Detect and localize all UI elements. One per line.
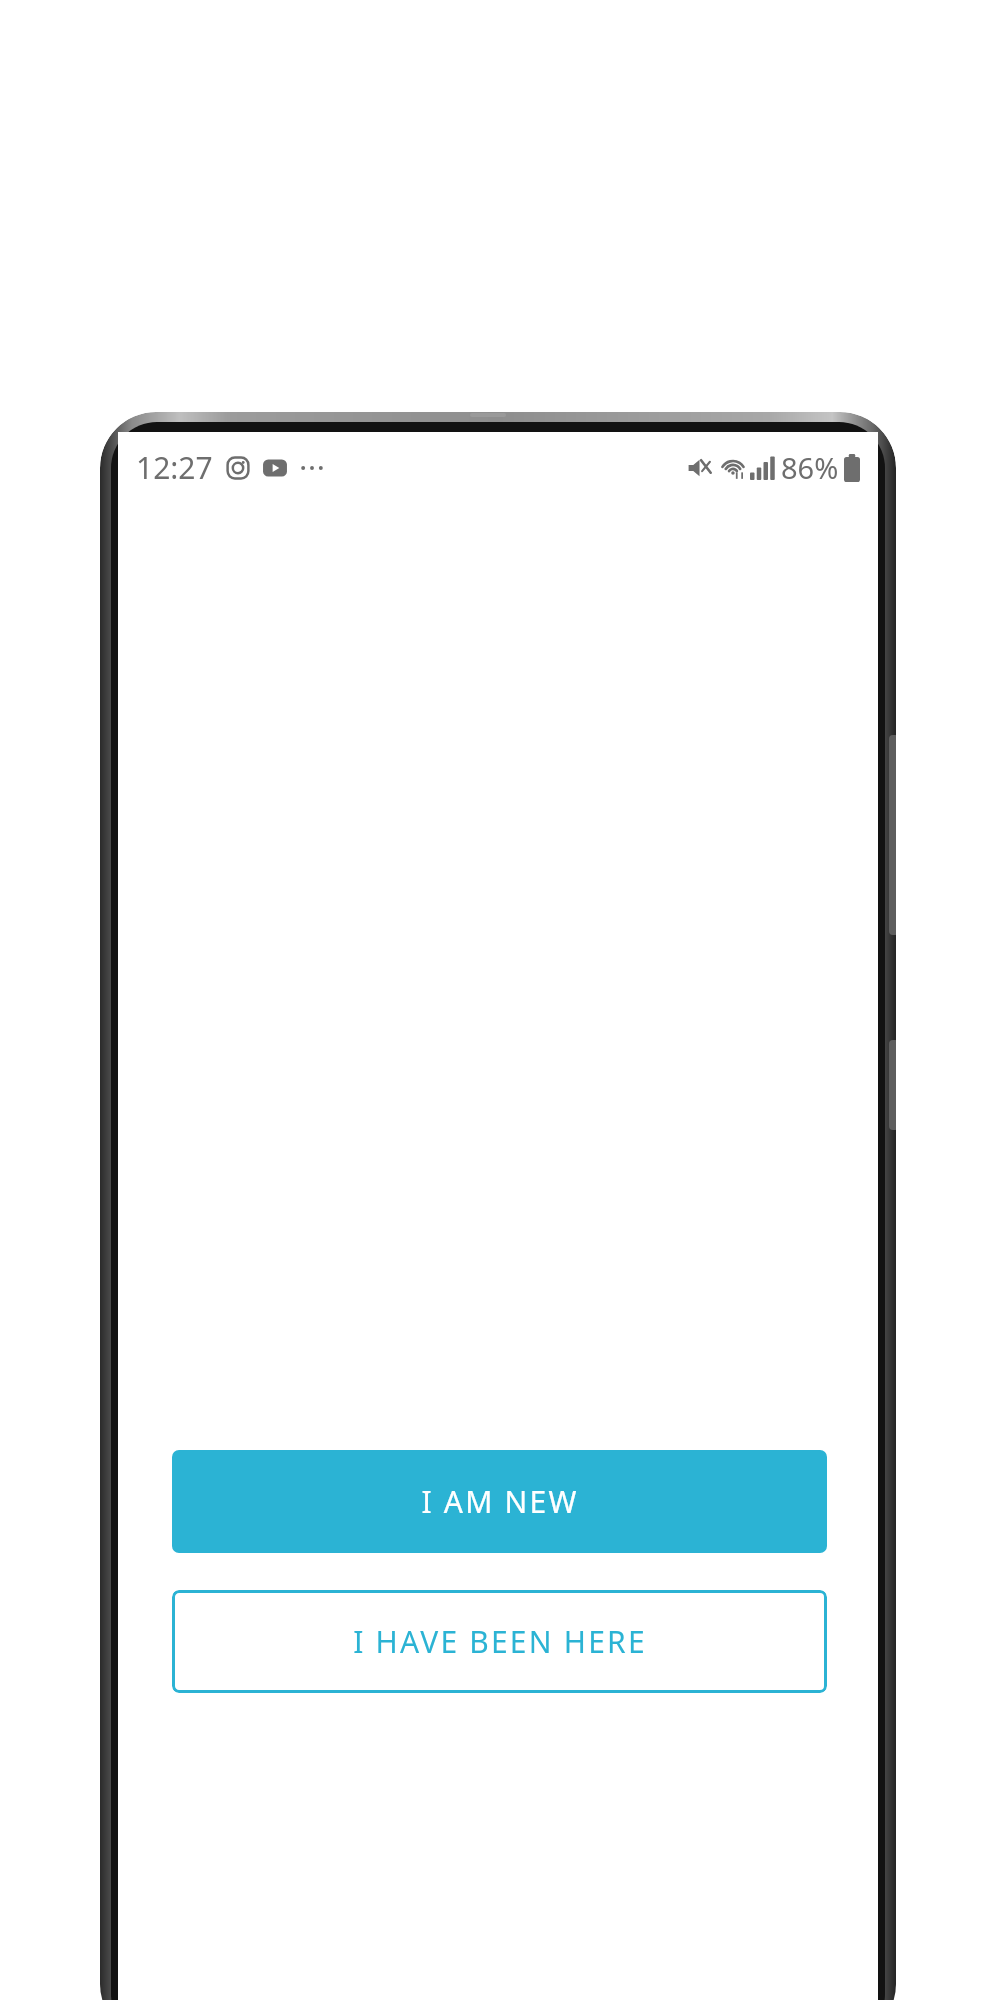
staticText: I AM NEW	[421, 1481, 579, 1522]
staticText: I HAVE BEEN HERE	[353, 1621, 647, 1662]
staticText: 12:27	[136, 447, 213, 488]
staticText: 86%	[781, 448, 839, 487]
button[interactable]: I AM NEW	[172, 1450, 827, 1553]
button[interactable]: I HAVE BEEN HERE	[172, 1590, 827, 1693]
